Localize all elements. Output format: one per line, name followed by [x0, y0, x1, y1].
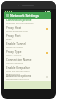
- staticText: Connection Name: [6, 58, 32, 62]
- staticText: Home Network: [6, 61, 24, 64]
- staticText: Ping the server every: [6, 69, 30, 72]
- staticText: Enable Keepalive: [6, 66, 30, 70]
- staticText: Proxy Host: [6, 26, 22, 30]
- staticText: Proxy Port: [6, 34, 21, 38]
- button[interactable]: Proxy Port: [4, 34, 51, 42]
- staticText: Route all traffic: [6, 45, 23, 48]
- staticText: 8080: [6, 37, 12, 40]
- button[interactable]: Navigate up: [5, 13, 10, 18]
- staticText: Connection profile: [6, 18, 32, 22]
- staticText: Proxy Type: [6, 50, 22, 54]
- button[interactable]: Enable Tunnel: [4, 42, 51, 50]
- button[interactable]: Proxy Type: [4, 50, 51, 58]
- staticText: Enable Tunnel: [6, 42, 26, 46]
- button[interactable]: Advanced options: [4, 74, 51, 82]
- button[interactable]: Proxy Host: [4, 26, 51, 34]
- button[interactable]: Navigate up: [4, 12, 51, 19]
- button[interactable]: Enable Keepalive: [4, 66, 51, 74]
- staticText: proxy.example.com: [6, 29, 28, 32]
- staticText: HTTP / HTTPS: [6, 53, 22, 56]
- staticText: Network Settings: [10, 13, 40, 18]
- staticText: 30 seconds: [6, 72, 19, 75]
- staticText: Certificates and DNS: [6, 77, 30, 80]
- staticText: Settings for this network: [6, 21, 34, 24]
- button[interactable]: Connection Name: [4, 58, 51, 66]
- staticText: Advanced options: [6, 74, 32, 78]
